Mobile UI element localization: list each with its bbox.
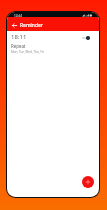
staticText: Repeat xyxy=(11,43,26,49)
staticText: 12:44 xyxy=(14,14,22,18)
button[interactable]: Toggle alarm xyxy=(82,35,90,41)
button[interactable]: Repeat xyxy=(7,43,99,56)
staticText: 18:11 xyxy=(11,33,27,41)
staticText: Mon, Tue, Wed, Thu, Fri xyxy=(11,50,45,54)
staticText: Reminder xyxy=(20,22,43,29)
button[interactable]: Back xyxy=(10,21,18,29)
button[interactable]: Add reminder xyxy=(82,176,94,188)
button[interactable]: 18:11 xyxy=(7,31,99,43)
